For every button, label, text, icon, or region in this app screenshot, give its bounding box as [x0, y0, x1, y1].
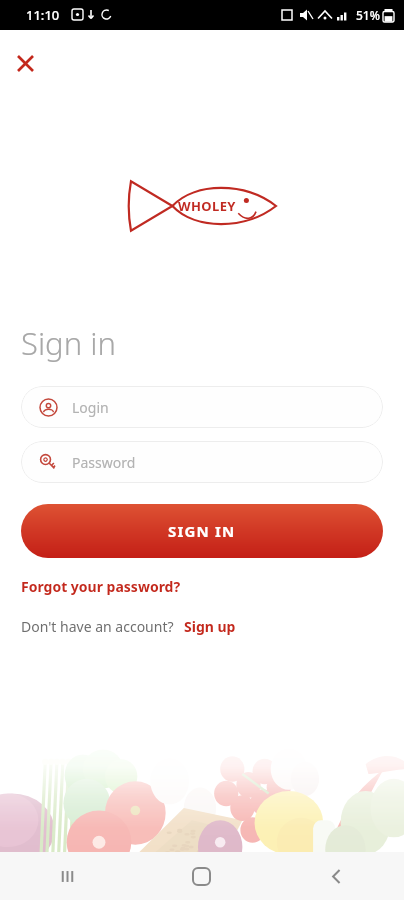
button[interactable]: Close: [8, 46, 42, 80]
staticText: 51%: [356, 7, 380, 23]
staticText: Login: [72, 398, 109, 417]
button[interactable]: Recent apps: [0, 852, 134, 900]
button[interactable]: Sign up: [184, 617, 236, 636]
button[interactable]: SIGN IN: [21, 504, 383, 558]
staticText: WHOLEY: [178, 197, 236, 215]
button[interactable]: Back: [269, 852, 404, 900]
staticText: Forgot your password?: [21, 577, 181, 596]
button[interactable]: Login: [21, 386, 383, 428]
button[interactable]: Password: [21, 441, 383, 483]
staticText: Password: [72, 453, 136, 472]
staticText: Sign up: [184, 617, 236, 636]
staticText: 11:10: [26, 6, 60, 24]
button[interactable]: Home: [134, 852, 269, 900]
staticText: SIGN IN: [168, 521, 236, 541]
staticText: Don't have an account?: [21, 617, 174, 636]
button[interactable]: Forgot your password?: [21, 577, 181, 596]
staticText: Sign in: [21, 322, 116, 364]
